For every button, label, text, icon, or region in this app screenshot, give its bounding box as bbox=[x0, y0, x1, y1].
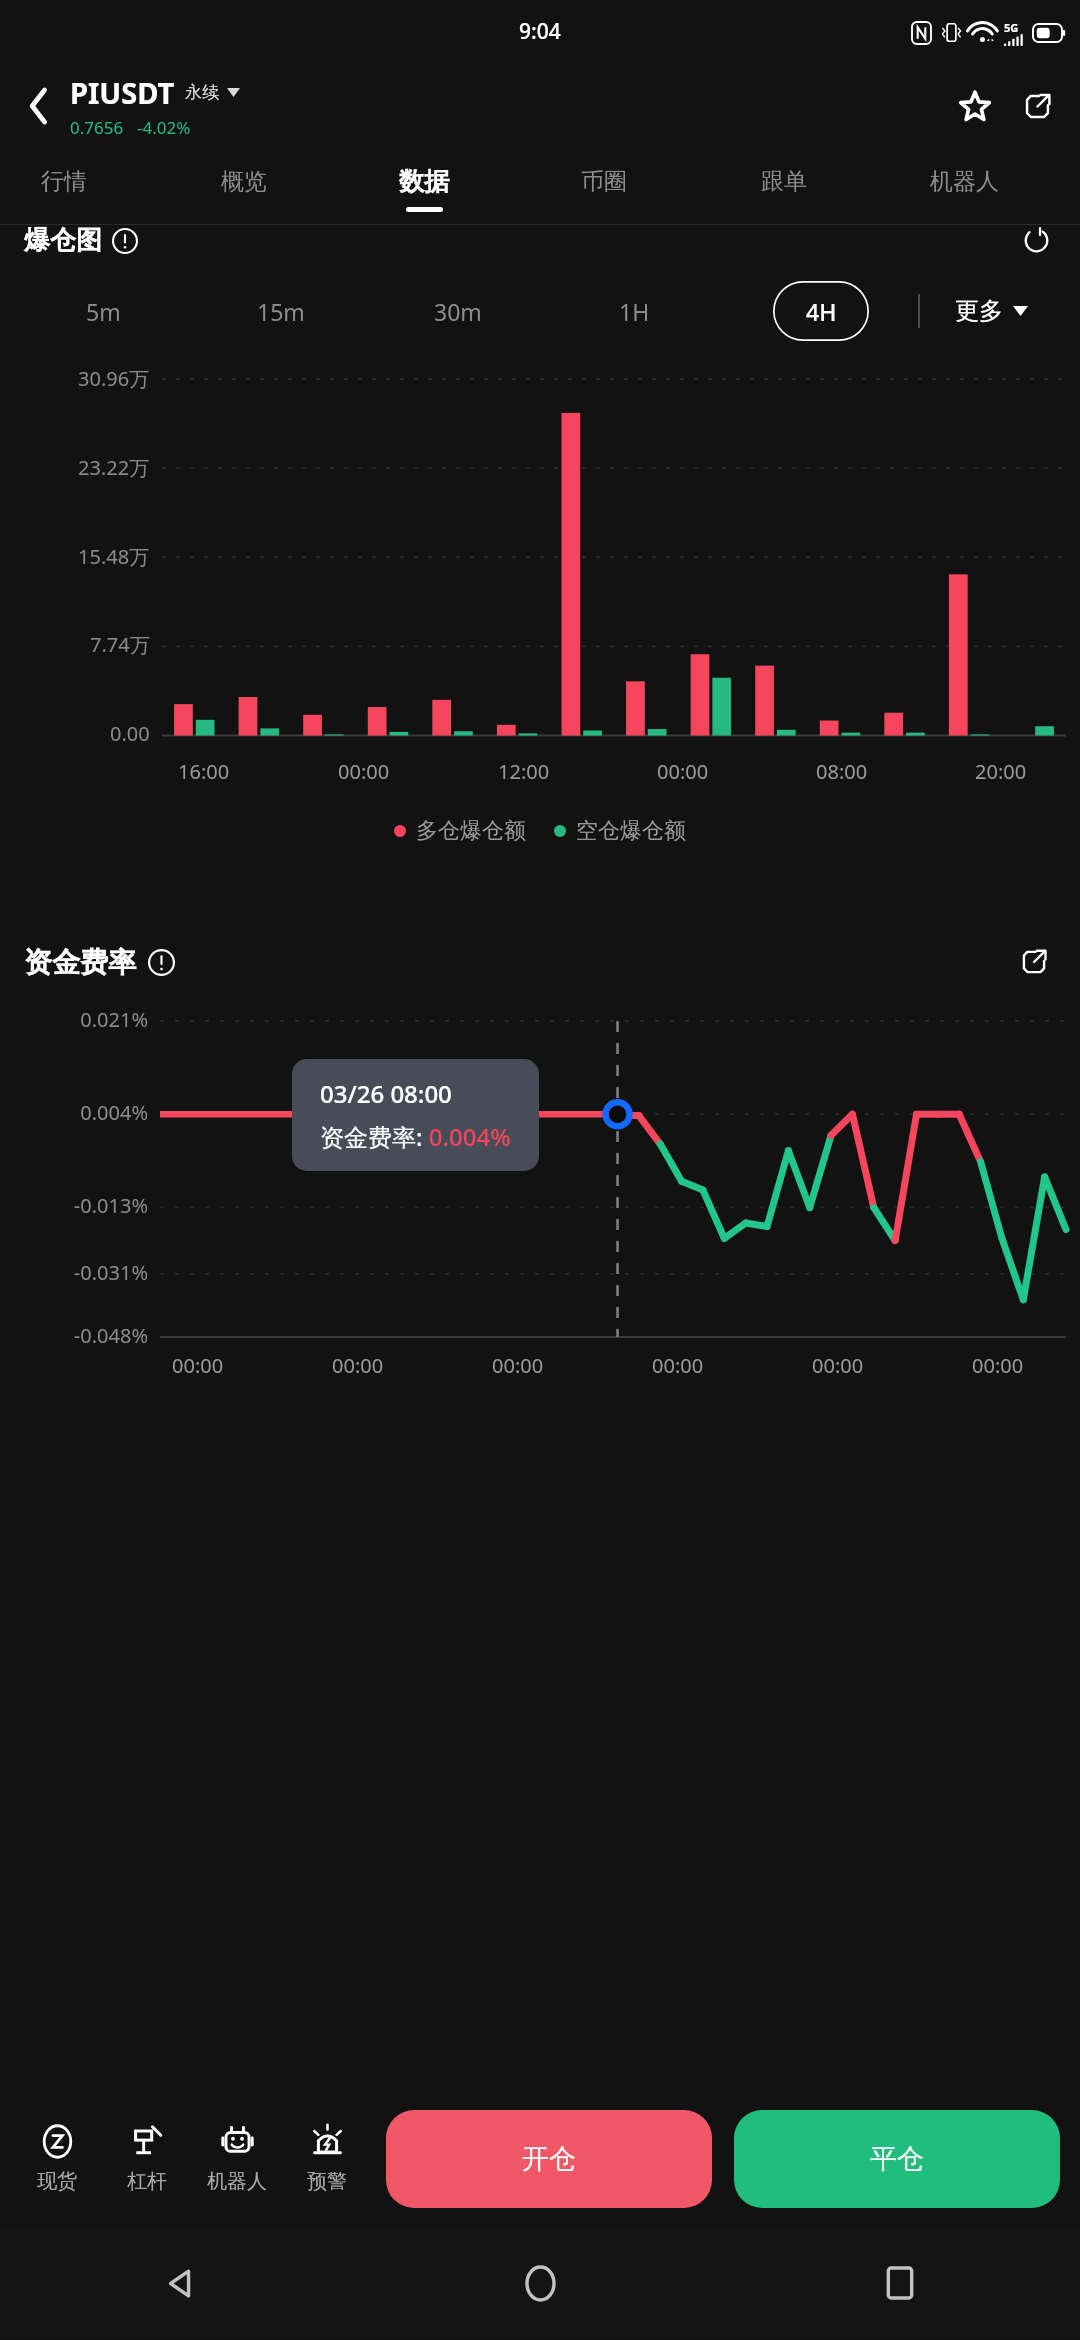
staticText: 资金费率: 0.004% bbox=[320, 1120, 511, 1153]
staticText: 机器人 bbox=[207, 2169, 267, 2194]
staticText: 0.004% bbox=[0, 1099, 148, 1126]
staticText: 1H bbox=[619, 296, 650, 327]
staticText: 00:00 bbox=[172, 1352, 224, 1379]
staticText: -0.013% bbox=[0, 1192, 148, 1219]
button[interactable]: 4H bbox=[773, 281, 869, 341]
button[interactable]: 更多 bbox=[920, 267, 1062, 355]
staticText: 00:00 bbox=[332, 1352, 384, 1379]
staticText: 爆仓图 bbox=[24, 224, 102, 257]
button[interactable]: 币圈 bbox=[514, 148, 694, 224]
staticText: 更多 bbox=[955, 296, 1003, 326]
button[interactable]: Home bbox=[360, 2226, 720, 2340]
staticText: 预警 bbox=[307, 2169, 347, 2194]
button[interactable]: 15m bbox=[192, 267, 369, 355]
staticText: 00:00 bbox=[338, 758, 390, 785]
staticText: 平仓 bbox=[870, 2142, 924, 2176]
button[interactable]: Share funding rate bbox=[1012, 940, 1056, 984]
button[interactable]: 30m bbox=[369, 267, 546, 355]
staticText: 00:00 bbox=[657, 758, 709, 785]
staticText: 4H bbox=[806, 296, 837, 327]
staticText: 币圈 bbox=[581, 167, 627, 196]
button[interactable]: Back bbox=[0, 2226, 360, 2340]
button[interactable]: 现货 bbox=[12, 2092, 102, 2226]
staticText: -0.031% bbox=[0, 1259, 148, 1286]
staticText: 20:00 bbox=[975, 758, 1027, 785]
staticText: 15.48万 bbox=[78, 543, 150, 570]
button[interactable]: 机器人 bbox=[874, 148, 1054, 224]
button[interactable]: Add to favorites bbox=[950, 81, 1000, 131]
staticText: 行情 bbox=[41, 167, 87, 196]
staticText: 03/26 08:00 bbox=[320, 1077, 452, 1110]
staticText: 多仓爆仓额 bbox=[416, 817, 526, 845]
staticText: -0.048% bbox=[0, 1322, 148, 1349]
staticText: 杠杆 bbox=[127, 2169, 167, 2194]
staticText: 数据 bbox=[399, 166, 449, 197]
staticText: 0.021% bbox=[0, 1006, 148, 1033]
button[interactable]: Refresh bbox=[1016, 226, 1056, 266]
staticText: 00:00 bbox=[972, 1352, 1024, 1379]
staticText: 08:00 bbox=[816, 758, 868, 785]
staticText: 机器人 bbox=[930, 167, 999, 196]
staticText: 30m bbox=[434, 296, 482, 327]
button[interactable]: 资金费率 bbox=[24, 945, 175, 980]
button[interactable]: 5m bbox=[14, 267, 192, 355]
staticText: 15m bbox=[257, 296, 305, 327]
staticText: 现货 bbox=[37, 2169, 77, 2194]
button[interactable]: 行情 bbox=[0, 148, 154, 224]
button[interactable]: 爆仓图 bbox=[24, 230, 138, 263]
button[interactable]: 概览 bbox=[154, 148, 334, 224]
button[interactable]: 平仓 bbox=[734, 2110, 1060, 2208]
staticText: 资金费率 bbox=[24, 945, 136, 980]
staticText: 23.22万 bbox=[78, 454, 150, 481]
button[interactable]: 开仓 bbox=[386, 2110, 712, 2208]
button[interactable]: 数据 bbox=[334, 148, 514, 224]
staticText: 0.7656 bbox=[70, 116, 124, 139]
staticText: 30.96万 bbox=[78, 365, 150, 392]
button[interactable]: Share bbox=[1012, 81, 1062, 131]
staticText: 12:00 bbox=[498, 758, 550, 785]
staticText: 9:04 bbox=[519, 17, 561, 46]
button[interactable]: Recent apps bbox=[720, 2226, 1080, 2340]
staticText: 7.74万 bbox=[90, 631, 150, 658]
staticText: 跟单 bbox=[761, 167, 807, 196]
staticText: 00:00 bbox=[492, 1352, 544, 1379]
staticText: 5m bbox=[86, 296, 121, 327]
staticText: 开仓 bbox=[522, 2142, 576, 2176]
staticText: 0.00 bbox=[110, 720, 150, 747]
staticText: PIUSDT bbox=[70, 73, 175, 112]
button[interactable]: 预警 bbox=[282, 2092, 372, 2226]
staticText: 00:00 bbox=[652, 1352, 704, 1379]
button[interactable]: 跟单 bbox=[694, 148, 874, 224]
staticText: -4.02% bbox=[137, 116, 191, 139]
button[interactable]: 机器人 bbox=[192, 2092, 282, 2226]
button[interactable]: 1H bbox=[546, 267, 723, 355]
button[interactable]: Back bbox=[16, 83, 62, 129]
staticText: 5G bbox=[1004, 20, 1019, 35]
staticText: 00:00 bbox=[812, 1352, 864, 1379]
staticText: 16:00 bbox=[178, 758, 230, 785]
staticText: 概览 bbox=[221, 167, 267, 196]
staticText: 空仓爆仓额 bbox=[576, 817, 686, 845]
button[interactable]: 杠杆 bbox=[102, 2092, 192, 2226]
button[interactable]: 03/26 08:00 bbox=[292, 1059, 539, 1171]
staticText: 永续 bbox=[185, 82, 219, 103]
